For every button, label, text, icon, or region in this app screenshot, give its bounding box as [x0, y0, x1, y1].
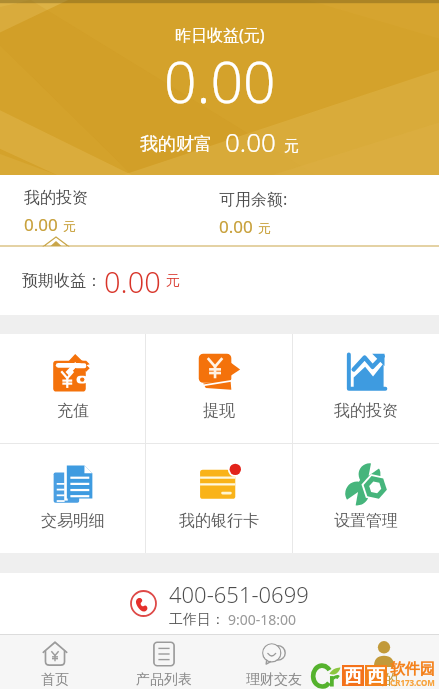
- staticText: 元: [258, 220, 271, 236]
- staticText: 0.00: [104, 262, 161, 301]
- staticText: 元: [284, 137, 299, 156]
- staticText: 预期收益：: [22, 271, 102, 291]
- staticText: 0.00: [225, 124, 276, 159]
- button[interactable]: 提现: [146, 334, 292, 443]
- button[interactable]: 理财交友: [219, 635, 329, 689]
- staticText: 昨日收益(元): [175, 24, 265, 46]
- staticText: 我的投资: [334, 401, 398, 421]
- staticText: 西: [344, 665, 362, 686]
- staticText: 0.00: [164, 42, 276, 120]
- button[interactable]: 充值: [0, 334, 145, 443]
- staticText: 产品列表: [136, 671, 192, 689]
- staticText: 我的财富: [140, 133, 212, 156]
- staticText: 400-651-0699: [169, 579, 309, 609]
- staticText: 0.00: [24, 213, 58, 236]
- staticText: 元: [63, 218, 76, 234]
- button[interactable]: 首页: [0, 635, 109, 689]
- staticText: 工作日：: [169, 611, 225, 629]
- button[interactable]: 我的投资: [293, 334, 439, 443]
- button[interactable]: 我的银行卡: [146, 444, 292, 553]
- button[interactable]: 我的: [329, 635, 439, 689]
- button[interactable]: 产品列表: [109, 635, 219, 689]
- staticText: 交易明细: [41, 511, 105, 531]
- staticText: 西: [367, 665, 385, 686]
- staticText: 我的: [370, 671, 398, 689]
- staticText: 软件园: [390, 660, 435, 679]
- staticText: 我的银行卡: [179, 511, 259, 531]
- staticText: 9:00-18:00: [228, 610, 297, 629]
- staticText: 提现: [203, 401, 235, 421]
- staticText: 0.00: [219, 215, 253, 238]
- staticText: 元: [166, 272, 180, 290]
- staticText: 我的投资: [24, 188, 88, 208]
- staticText: CR173.COM: [390, 677, 435, 688]
- staticText: 可用余额:: [219, 188, 288, 210]
- staticText: 充值: [57, 401, 89, 421]
- staticText: 首页: [41, 671, 69, 689]
- staticText: 设置管理: [334, 511, 398, 531]
- button[interactable]: 400-651-0699: [0, 573, 439, 634]
- button[interactable]: 设置管理: [293, 444, 439, 553]
- staticText: 理财交友: [246, 671, 302, 689]
- button[interactable]: 交易明细: [0, 444, 145, 553]
